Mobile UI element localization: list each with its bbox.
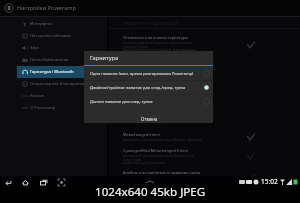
staticText: Опции экрана блокировки: [30, 81, 85, 87]
staticText: CyanogenMod Metachanged Intent: [123, 148, 188, 153]
button[interactable]: Интерфейс: [17, 18, 86, 30]
button[interactable]: Настройки обложки: [17, 30, 86, 42]
staticText: Одно нажатие (мин. время реагирования Po…: [90, 71, 202, 76]
button[interactable]: Разное: [17, 90, 86, 102]
button[interactable]: CyanogenMod Metachanged Intent: [108, 145, 300, 167]
button[interactable]: Долгое нажатие для след. трека: [84, 95, 213, 108]
button[interactable]: Опции экрана блокировки: [17, 78, 86, 90]
staticText: О Poweramp: [30, 105, 56, 111]
staticText: Гарнитура і Bluetooth: [30, 69, 74, 75]
staticText: Длительность нажатия клавиш ваших Blueto…: [123, 138, 202, 142]
staticText: Управление гарнитурой: [123, 20, 178, 26]
button[interactable]: Откликаться на кнопки гарнитуры: [108, 32, 300, 57]
button[interactable]: Двойное/тройное нажатие для след./пред. …: [84, 81, 213, 94]
button[interactable]: Папки/библиотека: [17, 54, 86, 66]
staticText: Интерфейс: [30, 21, 53, 27]
staticText: Гарнитура: [90, 54, 119, 62]
staticText: Настройки Poweramp: [17, 4, 76, 12]
button[interactable]: О Poweramp: [17, 102, 86, 114]
staticText: Включить управление Poweramp с помощью к…: [123, 41, 202, 54]
staticText: Альбом и исполнитель в названии трека: [123, 170, 201, 175]
button[interactable]: Одно нажатие (мин. время реагирования Po…: [84, 66, 213, 80]
button[interactable]: Настройки Poweramp: [0, 0, 300, 16]
staticText: Долгое нажатие для след. трека: [90, 99, 202, 104]
staticText: Длительность нажатия клавиш ваших Blueto…: [123, 154, 202, 164]
button[interactable]: Отмена: [136, 115, 162, 123]
button[interactable]: Back: [3, 178, 12, 187]
staticText: Папки/библиотека: [30, 57, 69, 63]
staticText: 15:02: [261, 177, 278, 186]
button[interactable]: Metachanged intent: [108, 129, 300, 145]
staticText: Двойное/тройное нажатие для след./пред. …: [90, 85, 202, 90]
button[interactable]: Recent apps: [39, 178, 48, 187]
staticText: Звук: [30, 45, 40, 51]
staticText: Отмена: [141, 116, 158, 122]
button[interactable]: Альбом и исполнитель в названии трека: [108, 167, 300, 189]
button[interactable]: Звук: [17, 42, 86, 54]
staticText: Настройки обложки: [30, 33, 71, 39]
staticText: Разное: [30, 93, 45, 99]
staticText: 1024x640 45kb JPEG: [95, 184, 206, 200]
staticText: Metachanged intent: [123, 132, 160, 137]
staticText: Помимо когда раскрывает Bluetooth показы…: [123, 176, 202, 186]
button[interactable]: Home: [21, 178, 30, 187]
button[interactable]: Гарнитура і Bluetooth: [17, 66, 86, 78]
staticText: Откликаться на кнопки гарнитуры: [123, 35, 189, 40]
button[interactable]: Screenshot: [57, 178, 66, 187]
